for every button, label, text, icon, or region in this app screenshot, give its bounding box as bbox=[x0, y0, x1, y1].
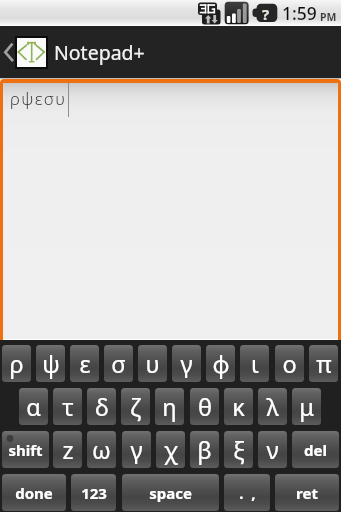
staticText: σ bbox=[111, 348, 126, 380]
button[interactable]: σ bbox=[104, 345, 133, 382]
button[interactable]: ι bbox=[240, 345, 269, 382]
staticText: δ bbox=[95, 391, 109, 423]
staticText: 123 bbox=[81, 483, 107, 503]
button[interactable]: ε bbox=[70, 345, 99, 382]
staticText: α bbox=[26, 391, 41, 423]
staticText: θ bbox=[198, 391, 212, 423]
staticText: μ bbox=[299, 391, 314, 423]
button[interactable]: α bbox=[19, 388, 48, 425]
staticText: . , bbox=[239, 483, 256, 503]
button[interactable]: γ bbox=[172, 345, 201, 382]
button[interactable]: δ bbox=[87, 388, 116, 425]
staticText: ω bbox=[92, 434, 111, 466]
button[interactable]: η bbox=[155, 388, 184, 425]
staticText: η bbox=[162, 391, 177, 423]
staticText: β bbox=[197, 434, 212, 466]
staticText: Notepad+ bbox=[54, 39, 145, 66]
button[interactable]: φ bbox=[206, 345, 235, 382]
staticText: τ bbox=[62, 391, 74, 423]
button[interactable]: ο bbox=[275, 345, 304, 382]
button[interactable]: z bbox=[53, 431, 82, 468]
button[interactable]: ψ bbox=[36, 345, 65, 382]
staticText: γ bbox=[180, 348, 193, 380]
button[interactable]: τ bbox=[53, 388, 82, 425]
button[interactable]: space bbox=[122, 474, 219, 511]
staticText: ξ bbox=[233, 434, 245, 466]
button[interactable]: β bbox=[190, 431, 219, 468]
staticText: ρψεσυ bbox=[10, 87, 67, 110]
button[interactable]: υ bbox=[138, 345, 167, 382]
button[interactable]: done bbox=[2, 474, 66, 511]
button[interactable]: . , bbox=[224, 474, 270, 511]
staticText: shift bbox=[8, 440, 43, 460]
button[interactable]: ρ bbox=[2, 345, 31, 382]
button[interactable]: μ bbox=[292, 388, 321, 425]
staticText: ? bbox=[262, 4, 270, 24]
staticText: done bbox=[15, 483, 53, 503]
staticText: κ bbox=[232, 391, 245, 423]
staticText: υ bbox=[145, 348, 160, 380]
button[interactable]: ν bbox=[258, 431, 287, 468]
staticText: ε bbox=[79, 348, 91, 380]
staticText: λ bbox=[266, 391, 279, 423]
button[interactable]: λ bbox=[258, 388, 287, 425]
button[interactable]: shift bbox=[2, 431, 49, 468]
button[interactable]: ret bbox=[275, 474, 339, 511]
staticText: ο bbox=[282, 348, 297, 380]
staticText: ν bbox=[266, 434, 279, 466]
button[interactable]: θ bbox=[190, 388, 219, 425]
button[interactable]: Back bbox=[0, 26, 15, 78]
staticText: PM bbox=[320, 10, 337, 24]
staticText: χ bbox=[164, 434, 178, 466]
button[interactable]: ω bbox=[87, 431, 116, 468]
button[interactable]: κ bbox=[224, 388, 253, 425]
button[interactable]: 123 bbox=[71, 474, 116, 511]
button[interactable]: ζ bbox=[121, 388, 150, 425]
staticText: φ bbox=[212, 348, 230, 380]
staticText: ζ bbox=[130, 391, 141, 423]
button[interactable]: χ bbox=[156, 431, 185, 468]
button[interactable]: π bbox=[309, 345, 338, 382]
staticText: ι bbox=[251, 348, 259, 380]
staticText: del bbox=[304, 440, 327, 460]
staticText: ρ bbox=[9, 348, 24, 380]
staticText: γ bbox=[130, 434, 143, 466]
button[interactable]: γ bbox=[122, 431, 151, 468]
staticText: ψ bbox=[42, 348, 60, 380]
staticText: π bbox=[316, 348, 332, 380]
button[interactable]: del bbox=[292, 431, 339, 468]
staticText: ret bbox=[296, 483, 318, 503]
staticText: 1:59 bbox=[282, 1, 317, 25]
staticText: z bbox=[62, 434, 74, 466]
button[interactable]: ξ bbox=[224, 431, 253, 468]
staticText: space bbox=[149, 483, 192, 503]
